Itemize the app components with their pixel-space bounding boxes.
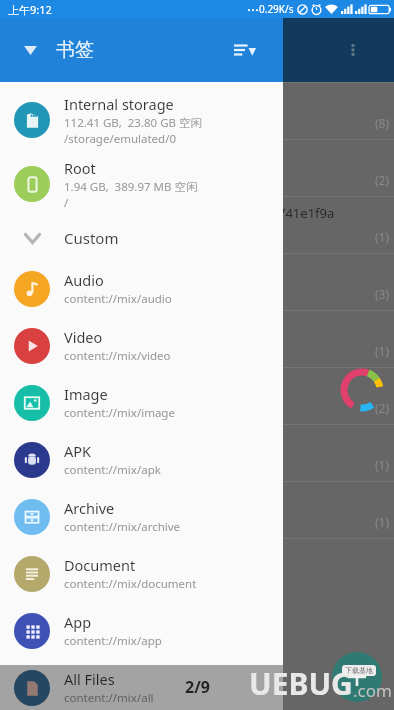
staticText: Image [64, 384, 108, 404]
staticText: (2) [375, 172, 390, 188]
staticText: Internal storage [64, 94, 174, 114]
button[interactable]: All Files [0, 659, 283, 710]
button[interactable]: Audio [0, 260, 283, 317]
staticText: UEBUG [249, 663, 353, 704]
button[interactable]: Document [0, 545, 283, 602]
staticText: content://mix/audio [64, 291, 172, 307]
staticText: 上午9:12 [8, 2, 52, 17]
staticText: content://mix/app [64, 633, 162, 649]
staticText: content://mix/apk [64, 462, 161, 478]
button[interactable]: Custom [0, 216, 283, 260]
staticText: (8) [375, 115, 390, 131]
button[interactable]: Expand bookmarks [14, 34, 46, 66]
staticText: content://mix/image [64, 405, 175, 421]
staticText: Video [64, 327, 103, 347]
staticText: (1) [375, 343, 390, 359]
staticText: 0.29K/s [259, 2, 294, 16]
button[interactable]: App [0, 602, 283, 659]
staticText: Document [64, 555, 136, 575]
staticText: content://mix/archive [64, 519, 181, 535]
staticText: 书签 [56, 38, 94, 62]
staticText: APK [64, 441, 92, 461]
button[interactable]: APK [0, 431, 283, 488]
button[interactable]: Video [0, 317, 283, 374]
staticText: All Files [64, 669, 115, 689]
button[interactable]: Add [332, 652, 382, 702]
staticText: 1.94 GB, 389.97 MB 空闲 [64, 179, 198, 195]
button[interactable]: Image [0, 374, 283, 431]
staticText: App [64, 612, 92, 632]
staticText: Archive [64, 498, 115, 518]
staticText: /storage/emulated/0 [64, 131, 177, 147]
staticText: 下载基地 [345, 666, 373, 675]
staticText: Custom [64, 228, 119, 248]
staticText: content://mix/document [64, 576, 197, 592]
button[interactable]: Internal storage [0, 88, 283, 152]
staticText: 741e1f9a [278, 204, 335, 222]
button[interactable]: Archive [0, 488, 283, 545]
button[interactable]: More options [338, 35, 368, 65]
staticText: (1) [375, 457, 390, 473]
staticText: 2/9 [185, 676, 210, 698]
staticText: Audio [64, 270, 104, 290]
staticText: 112.41 GB, 23.80 GB 空闲 [64, 115, 202, 131]
staticText: content://mix/video [64, 348, 171, 364]
button[interactable]: Root [0, 152, 283, 216]
staticText: content://mix/all [64, 690, 154, 706]
staticText: Root [64, 158, 96, 178]
staticText: (3) [375, 286, 390, 302]
staticText: (1) [375, 229, 390, 245]
button[interactable]: Sort [227, 32, 263, 68]
staticText: / [64, 195, 69, 211]
staticText: .com [353, 679, 392, 702]
staticText: (1) [375, 514, 390, 530]
staticText: (2) [375, 400, 390, 416]
